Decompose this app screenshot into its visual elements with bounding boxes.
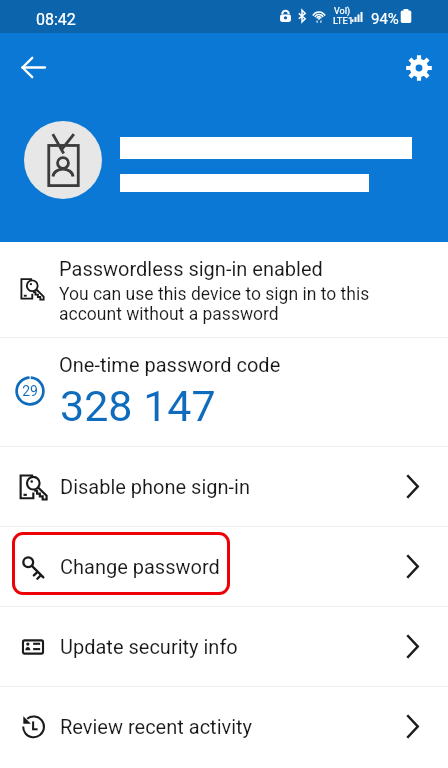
- button[interactable]: Settings: [396, 45, 441, 90]
- staticText: 08:42: [36, 10, 76, 29]
- staticText: Disable phone sign-in: [60, 475, 251, 498]
- button[interactable]: Update security info: [0, 607, 448, 686]
- button[interactable]: Change password: [0, 527, 448, 606]
- staticText: You can use this device to sign in to th…: [59, 284, 370, 324]
- staticText: Update security info: [60, 635, 238, 658]
- button[interactable]: Back: [11, 45, 56, 90]
- staticText: VoI): [334, 6, 351, 17]
- staticText: 94%: [371, 10, 399, 28]
- staticText: Change password: [60, 555, 220, 578]
- staticText: Passwordless sign-in enabled: [59, 257, 323, 280]
- button[interactable]: Review recent activity: [0, 687, 448, 766]
- button[interactable]: 29: [0, 338, 448, 446]
- staticText: One-time password code: [59, 353, 281, 376]
- staticText: 29: [22, 383, 38, 399]
- button[interactable]: Passwordless sign-in enabled: [0, 242, 448, 337]
- staticText: LTE1: [333, 15, 354, 26]
- staticText: Review recent activity: [60, 715, 253, 738]
- staticText: 328 147: [60, 381, 216, 431]
- button[interactable]: Disable phone sign-in: [0, 447, 448, 526]
